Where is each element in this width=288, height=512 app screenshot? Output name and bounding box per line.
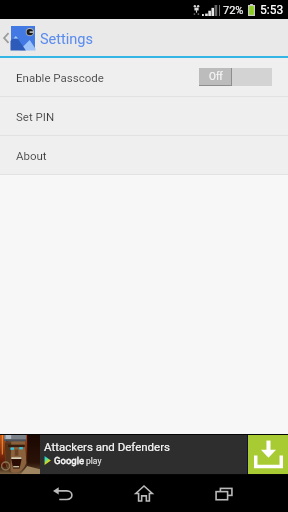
staticText: Off [209, 71, 223, 83]
staticText: 72% [223, 4, 244, 17]
staticText: Google [54, 455, 84, 466]
staticText: Settings [40, 31, 93, 48]
staticText: About [16, 149, 47, 162]
button[interactable]: Navigate up [0, 19, 11, 56]
button[interactable]: Recent apps [206, 480, 242, 507]
button[interactable]: Back [45, 480, 81, 507]
staticText: Attackers and Defenders [44, 440, 171, 453]
button[interactable]: Enable Passcode [0, 58, 288, 96]
button[interactable]: Home [126, 478, 162, 509]
staticText: Enable Passcode [16, 71, 199, 84]
staticText: Set PIN [16, 110, 55, 123]
staticText: 5:53 [260, 3, 284, 17]
button[interactable]: Attackers and Defenders [0, 434, 288, 475]
button[interactable]: Set PIN [0, 97, 288, 135]
button[interactable]: About [0, 136, 288, 174]
staticText: play [86, 456, 102, 466]
button[interactable]: Install [248, 434, 288, 475]
